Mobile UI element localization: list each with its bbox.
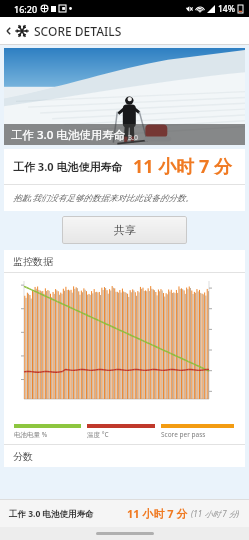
button[interactable]: 共享: [62, 216, 187, 244]
staticText: 共享: [114, 223, 136, 237]
staticText: 11 小时 7 分: [127, 506, 188, 521]
button[interactable]: 工作 3.0 电池使用寿命: [4, 48, 245, 145]
staticText: Score per pass: [161, 430, 206, 439]
staticText: 工作 3.0 电池使用寿命: [9, 508, 94, 520]
staticText: 分数: [13, 450, 33, 463]
staticText: 11 小时 7 分: [133, 154, 232, 179]
staticText: 监控数据: [13, 255, 53, 268]
staticText: (11 小时 7 分): [191, 508, 240, 519]
staticText: 电池电量 %: [14, 430, 48, 439]
other: Back: [4, 26, 14, 36]
staticText: SCORE DETAILS: [34, 23, 122, 39]
staticText: 14%: [218, 3, 235, 15]
staticText: 16:20: [14, 3, 38, 15]
staticText: 3.0: [128, 133, 138, 143]
button[interactable]: Back: [0, 17, 249, 44]
button[interactable]: 工作 3.0 电池使用寿命: [0, 500, 249, 527]
staticText: 工作 3.0 电池使用寿命: [13, 159, 123, 174]
staticText: 工作 3.0 电池使用寿命: [11, 127, 126, 143]
staticText: 抱歉,我们没有足够的数据来对比此设备的分数。: [13, 192, 194, 204]
staticText: 温度 °C: [87, 430, 109, 439]
